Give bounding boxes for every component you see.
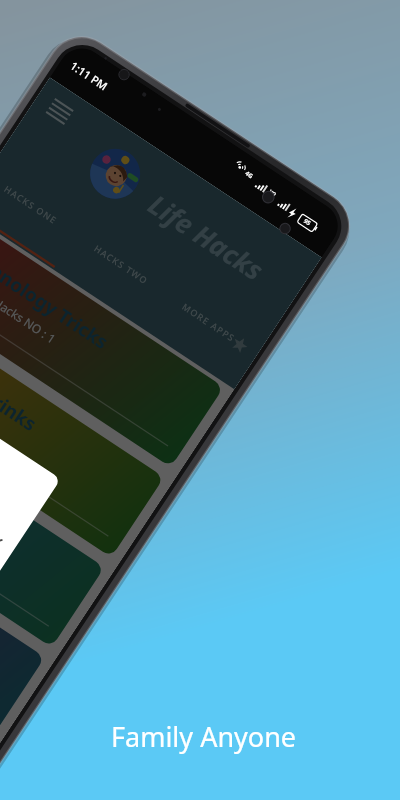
button[interactable]: Life Hacks app preview [0, 0, 400, 800]
other: Life Hacks app preview [0, 0, 400, 800]
